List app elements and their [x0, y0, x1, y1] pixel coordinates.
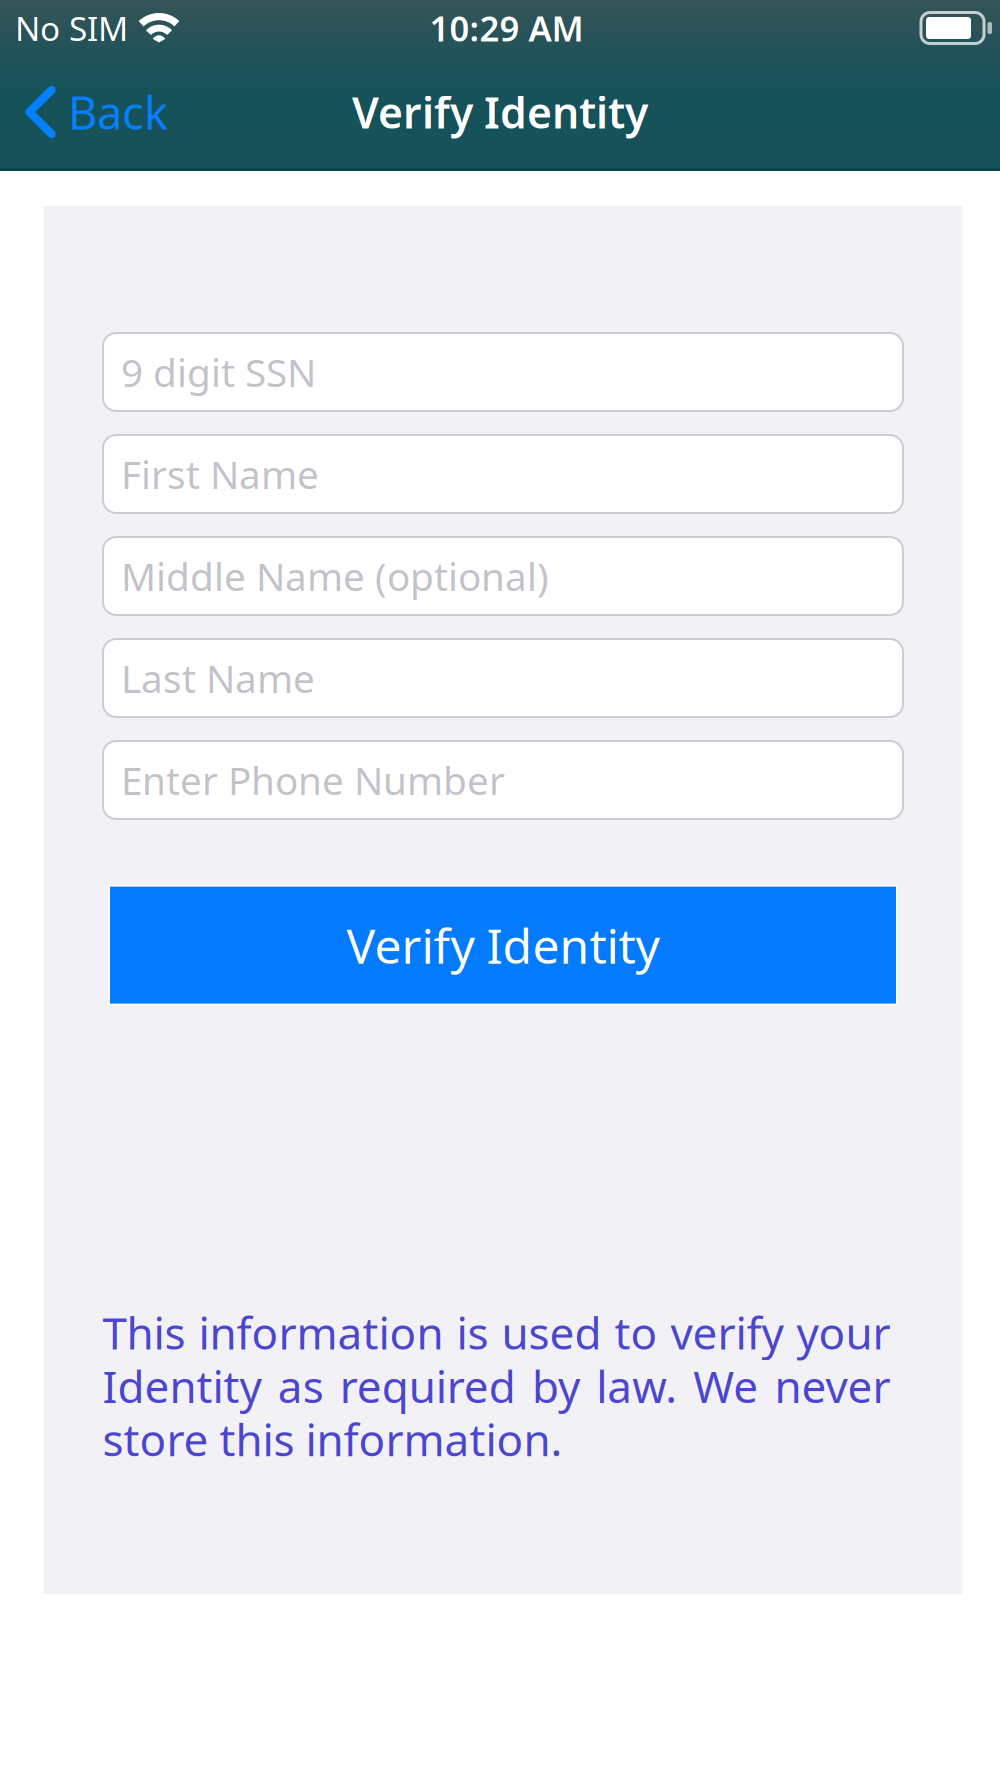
staticText: by	[532, 1357, 580, 1415]
staticText: Identity	[102, 1357, 261, 1415]
button[interactable]: Back	[0, 67, 186, 157]
staticText: Last Name	[121, 652, 315, 704]
staticText: required	[340, 1357, 516, 1415]
button[interactable]: Enter Phone Number	[103, 741, 903, 819]
button[interactable]: Verify Identity	[108, 885, 898, 1005]
staticText: Middle Name (optional)	[121, 550, 549, 602]
staticText: your	[796, 1303, 890, 1362]
staticText: Verify Identity	[346, 913, 659, 977]
staticText: verify	[670, 1303, 783, 1362]
staticText: We	[693, 1357, 758, 1415]
staticText: as	[278, 1357, 324, 1415]
staticText: to	[614, 1303, 657, 1362]
staticText: 10:29 AM	[429, 5, 583, 51]
staticText: used	[501, 1303, 601, 1362]
staticText: Back	[68, 82, 168, 142]
staticText: information	[198, 1303, 443, 1362]
staticText: Verify Identity	[352, 84, 648, 140]
staticText: law.	[596, 1357, 677, 1415]
button[interactable]: Middle Name (optional)	[103, 537, 903, 615]
button[interactable]: Last Name	[103, 639, 903, 717]
staticText: Enter Phone Number	[121, 754, 505, 806]
staticText: This	[102, 1303, 185, 1362]
staticText: 9 digit SSN	[121, 346, 316, 398]
staticText: store this information.	[102, 1410, 562, 1468]
staticText: First Name	[121, 448, 319, 500]
staticText: is	[456, 1303, 488, 1362]
staticText: No SIM	[15, 6, 128, 50]
button[interactable]: First Name	[103, 435, 903, 513]
button[interactable]: 9 digit SSN	[103, 333, 903, 411]
staticText: never	[774, 1357, 890, 1415]
